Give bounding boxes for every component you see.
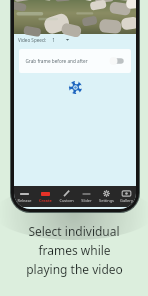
button[interactable]: Release — [14, 186, 35, 207]
other: Loading — [69, 81, 82, 94]
staticText: Select individual — [28, 223, 120, 239]
button[interactable]: Slider — [76, 186, 96, 207]
staticText: playing the video — [26, 261, 123, 277]
button[interactable]: Custom — [56, 186, 76, 207]
staticText: Settings — [99, 198, 114, 203]
staticText: Create — [39, 198, 52, 203]
button[interactable]: Create — [35, 186, 56, 207]
button[interactable]: Gallery — [116, 186, 136, 207]
staticText: Release — [17, 198, 32, 203]
staticText: Video Speed: — [18, 37, 46, 43]
button[interactable]: Grab frame before and after — [19, 49, 131, 73]
staticText: Slider — [81, 198, 92, 203]
button[interactable]: Grab frame before and after toggle — [109, 56, 125, 66]
staticText: frames while — [38, 242, 111, 258]
staticText: Gallery — [120, 198, 133, 203]
button[interactable]: Settings — [96, 186, 116, 207]
staticText: 1 — [52, 37, 55, 43]
staticText: Grab frame before and after — [25, 58, 88, 64]
staticText: Custom — [59, 198, 74, 203]
button[interactable]: 1 — [52, 34, 73, 45]
